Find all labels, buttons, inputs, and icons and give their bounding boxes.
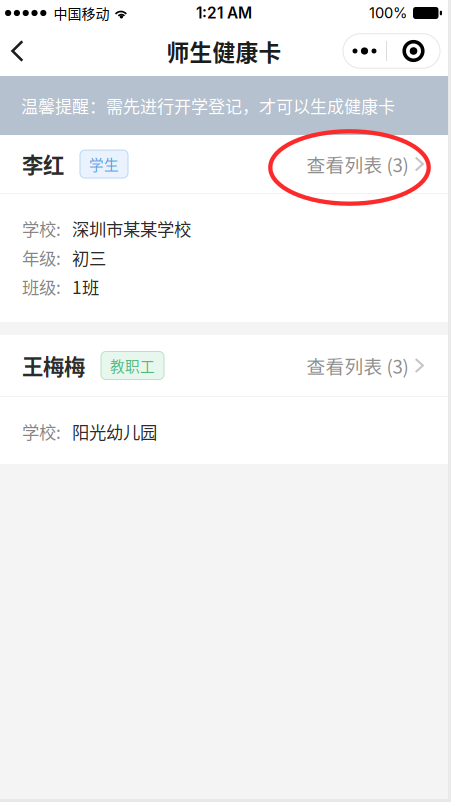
- staticText: 中国移动: [53, 3, 109, 23]
- staticText: 查看列表 (3): [307, 150, 409, 177]
- staticText: 学校:: [22, 419, 61, 444]
- button[interactable]: 查看列表 (3): [291, 137, 424, 190]
- staticText: 1班: [72, 274, 99, 299]
- staticText: 学生: [89, 153, 119, 175]
- staticText: 班级:: [22, 274, 61, 299]
- button[interactable]: Back: [0, 27, 42, 75]
- button[interactable]: More options: [343, 34, 440, 68]
- staticText: 王梅梅: [22, 350, 85, 381]
- staticText: 1:21 AM: [196, 4, 252, 22]
- staticText: 年级:: [22, 245, 61, 270]
- staticText: 李红: [22, 149, 64, 179]
- staticText: 温馨提醒：需先进行开学登记，才可以生成健康卡: [21, 93, 395, 118]
- staticText: 学校:: [22, 216, 61, 241]
- staticText: 深圳市某某学校: [72, 216, 191, 241]
- button[interactable]: 查看列表 (3): [291, 339, 424, 392]
- staticText: 教职工: [110, 355, 155, 376]
- staticText: 阳光幼儿园: [72, 419, 157, 444]
- staticText: 初三: [72, 245, 106, 270]
- staticText: 100%: [369, 4, 407, 22]
- staticText: 师生健康卡: [166, 35, 281, 67]
- staticText: 查看列表 (3): [307, 352, 409, 379]
